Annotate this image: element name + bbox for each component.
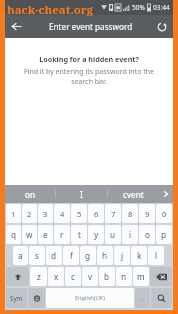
button[interactable]: a [13,246,28,265]
staticText: g [85,250,91,261]
staticText: cvent [123,189,144,200]
button[interactable]: r [54,225,70,244]
button[interactable]: 2 [22,204,37,223]
button[interactable]: 7 [105,204,121,223]
staticText: 1 [11,209,16,219]
staticText: I [80,189,83,200]
button[interactable]: . [135,288,150,308]
button[interactable]: English(UK) [46,288,134,308]
button[interactable]: 9 [139,204,155,223]
button[interactable]: I [56,185,107,203]
button[interactable]: search [151,288,172,308]
button[interactable]: 8 [122,204,138,223]
staticText: 6 [94,209,99,219]
staticText: 5 [77,209,82,219]
staticText: a [18,250,23,261]
staticText: h [102,250,108,261]
staticText: English(UK) [75,294,105,302]
staticText: w [26,229,33,240]
staticText: 4 [60,209,65,219]
button[interactable]: g [80,246,96,265]
button[interactable]: emoji [28,288,45,308]
staticText: u [110,229,116,240]
staticText: 8 [128,209,133,219]
staticText: i [129,229,132,240]
button[interactable]: i [122,225,138,244]
button[interactable]: Sym [6,288,27,308]
staticText: n [121,271,127,282]
staticText: Find it by entering its password into th… [13,67,165,87]
button[interactable]: x [48,267,64,286]
button[interactable]: s [29,246,45,265]
button[interactable]: p [156,225,172,244]
button[interactable]: j [114,246,130,265]
staticText: r [60,229,64,240]
button[interactable]: o [139,225,155,244]
staticText: x [54,271,59,282]
button[interactable]: d [46,246,62,265]
button[interactable]: l [148,246,164,265]
staticText: c [71,271,75,282]
button[interactable]: n [116,267,132,286]
button[interactable]: 6 [88,204,104,223]
staticText: z [37,271,41,282]
button[interactable]: h [97,246,113,265]
button[interactable]: q [6,225,21,244]
button[interactable]: 4 [54,204,70,223]
staticText: e [43,229,48,240]
button[interactable]: e [38,225,53,244]
button[interactable]: b [99,267,115,286]
staticText: f [70,250,73,261]
staticText: 03:44 [153,3,170,12]
button[interactable]: 1 [6,204,21,223]
staticText: s [35,250,39,261]
button[interactable]: 5 [71,204,87,223]
staticText: t [78,229,81,240]
staticText: . [141,293,144,303]
staticText: b [104,271,110,282]
button[interactable]: on [5,185,55,203]
staticText: 2 [27,209,32,219]
staticText: Enter event password [49,21,133,32]
staticText: q [11,229,17,240]
staticText: 0 [162,209,167,219]
button[interactable]: Back [5,15,28,38]
button[interactable]: More suggestions [159,185,173,203]
staticText: on [25,189,36,200]
button[interactable]: t [71,225,87,244]
staticText: Sym [10,294,23,302]
button[interactable]: k [131,246,147,265]
staticText: o [145,229,150,240]
button[interactable]: f [63,246,79,265]
staticText: v [88,271,93,282]
button[interactable]: m [133,267,149,286]
staticText: k [137,250,142,261]
staticText: l [155,250,158,261]
button[interactable]: u [105,225,121,244]
staticText: 7 [111,209,116,219]
button[interactable]: shift [6,267,29,286]
staticText: 50% [132,3,145,12]
button[interactable]: 3 [38,204,53,223]
button[interactable]: v [82,267,98,286]
staticText: m [137,271,145,282]
button[interactable]: y [88,225,104,244]
button[interactable]: Refresh [150,15,173,38]
staticText: 9 [145,209,150,219]
staticText: j [121,250,124,261]
button[interactable]: del [150,267,172,286]
staticText: d [51,250,57,261]
button[interactable]: w [22,225,37,244]
button[interactable]: 0 [156,204,172,223]
button[interactable]: c [65,267,81,286]
button[interactable]: cvent [108,185,159,203]
staticText: hack-cheat.org [7,2,94,18]
button[interactable]: z [30,267,47,286]
staticText: y [94,229,99,240]
staticText: p [161,229,167,240]
staticText: 3 [43,209,48,219]
staticText: Looking for a hidden event? [39,54,139,64]
